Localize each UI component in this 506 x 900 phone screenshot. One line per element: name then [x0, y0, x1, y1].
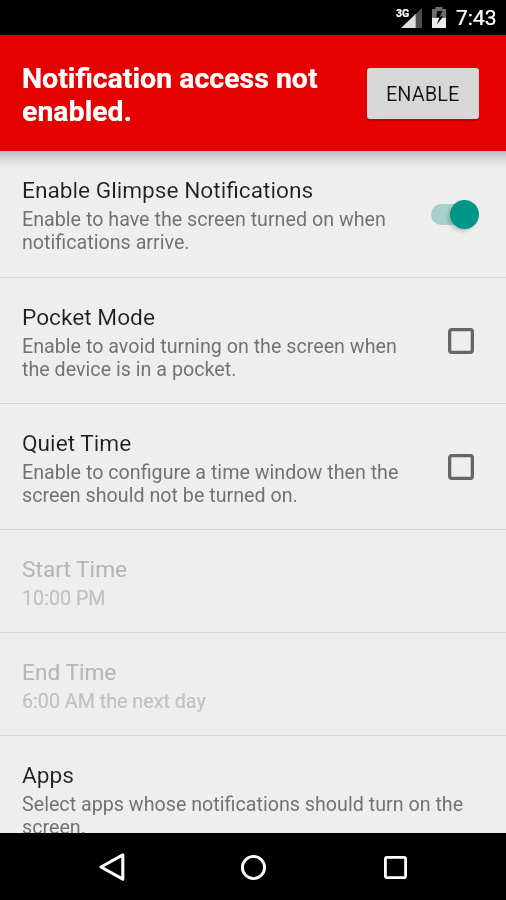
staticText: Enable Glimpse Notifications: [22, 177, 314, 204]
button[interactable]: Toggle: [431, 197, 479, 231]
staticText: Enable to avoid turning on the screen wh…: [22, 335, 397, 358]
button[interactable]: Apps: [0, 736, 506, 856]
button[interactable]: Checkbox: [439, 445, 483, 489]
button[interactable]: ENABLE: [367, 68, 479, 119]
staticText: Enable to have the screen turned on when: [22, 208, 386, 231]
button[interactable]: Pocket Mode: [0, 278, 506, 403]
staticText: Select apps whose notifications should t…: [22, 793, 464, 816]
staticText: Pocket Mode: [22, 304, 155, 331]
staticText: screen should not be turned on.: [22, 484, 298, 507]
staticText: screen.: [22, 816, 86, 839]
button[interactable]: Checkbox: [439, 319, 483, 363]
staticText: ENABLE: [386, 82, 460, 105]
staticText: 3G: [396, 7, 410, 19]
button[interactable]: Recents: [365, 837, 425, 897]
button[interactable]: Back: [82, 837, 142, 897]
staticText: 7:43: [456, 6, 497, 31]
staticText: Notification access not enabled.: [22, 62, 342, 128]
staticText: 10:00 PM: [22, 587, 106, 610]
button[interactable]: Start Time: [0, 530, 506, 632]
staticText: Start Time: [22, 556, 128, 583]
staticText: the device is in a pocket.: [22, 358, 237, 381]
staticText: Apps: [22, 762, 74, 789]
button[interactable]: End Time: [0, 633, 506, 735]
staticText: 6:00 AM the next day: [22, 690, 206, 713]
button[interactable]: Home: [223, 837, 283, 897]
staticText: Quiet Time: [22, 430, 132, 457]
button[interactable]: Enable Glimpse Notifications: [0, 151, 506, 277]
staticText: Enable to configure a time window then t…: [22, 461, 399, 484]
button[interactable]: Quiet Time: [0, 404, 506, 529]
staticText: End Time: [22, 659, 117, 686]
staticText: notifications arrive.: [22, 231, 190, 254]
